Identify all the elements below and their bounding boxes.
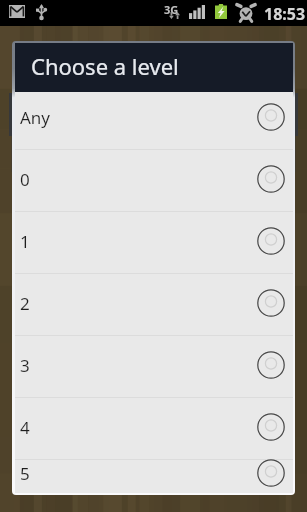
staticText: Choose a level	[31, 51, 179, 81]
staticText: 18:53	[264, 3, 306, 25]
staticText: 5	[20, 462, 30, 485]
button[interactable]: 0	[15, 150, 293, 211]
button[interactable]: 2	[15, 274, 293, 335]
button[interactable]: 4	[15, 398, 293, 459]
button[interactable]: 5	[15, 460, 293, 489]
button[interactable]: 1	[15, 212, 293, 273]
staticText: Any	[20, 106, 51, 129]
staticText: 0	[20, 168, 30, 191]
staticText: 1	[20, 230, 30, 253]
button[interactable]: 3	[15, 336, 293, 397]
staticText: 4	[20, 416, 30, 439]
button[interactable]: Any	[15, 92, 293, 149]
staticText: 2	[20, 292, 30, 315]
staticText: 3	[20, 354, 30, 377]
staticText: 3G	[164, 2, 179, 17]
